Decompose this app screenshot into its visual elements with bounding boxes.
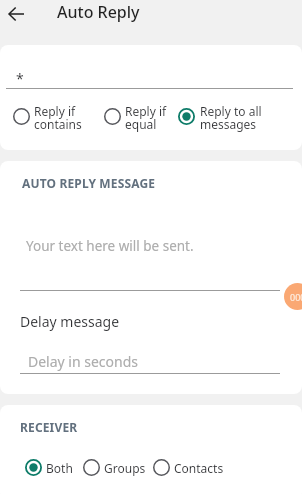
staticText: Reply if contains [34, 103, 82, 132]
button[interactable]: Option [153, 459, 170, 476]
staticText: Groups [104, 460, 146, 476]
staticText: Delay in seconds [28, 352, 139, 371]
staticText: Reply to all messages [200, 103, 262, 132]
staticText: Auto Reply [57, 1, 140, 23]
staticText: AUTO REPLY MESSAGE [22, 175, 156, 191]
staticText: Delay message [20, 312, 120, 331]
button[interactable]: Option [104, 108, 121, 125]
staticText: Contacts [174, 460, 224, 476]
staticText: Both [46, 460, 73, 476]
button[interactable]: Back [2, 0, 30, 27]
staticText: 000 [290, 291, 302, 303]
button[interactable]: Selected option [25, 459, 42, 476]
staticText: RECEIVER [20, 419, 78, 435]
button[interactable]: Character counter [284, 283, 302, 310]
staticText: Your text here will be sent. [26, 237, 194, 255]
button[interactable]: Option [83, 459, 100, 476]
staticText: * [16, 69, 24, 88]
staticText: Reply if equal [125, 103, 167, 132]
button[interactable]: Option [13, 108, 30, 125]
button[interactable]: Selected option [178, 108, 195, 125]
